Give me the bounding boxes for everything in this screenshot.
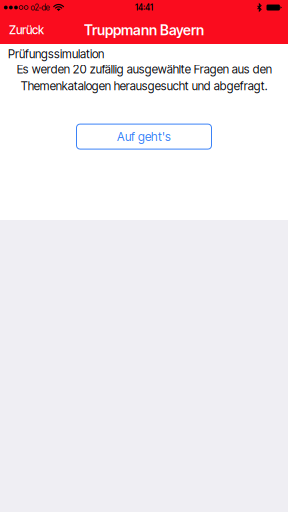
staticText: Es werden 20 zufällig ausgewählte Fragen… bbox=[16, 62, 271, 93]
staticText: 14:41 bbox=[135, 3, 153, 12]
staticText: Auf geht's bbox=[117, 129, 171, 144]
staticText: o2-de bbox=[30, 3, 49, 12]
button[interactable]: Zurück bbox=[0, 15, 53, 44]
staticText: Prüfungssimulation bbox=[8, 47, 104, 61]
staticText: Truppmann Bayern bbox=[84, 21, 204, 38]
button[interactable]: Auf geht's bbox=[76, 124, 211, 149]
staticText: Zurück bbox=[9, 23, 44, 37]
